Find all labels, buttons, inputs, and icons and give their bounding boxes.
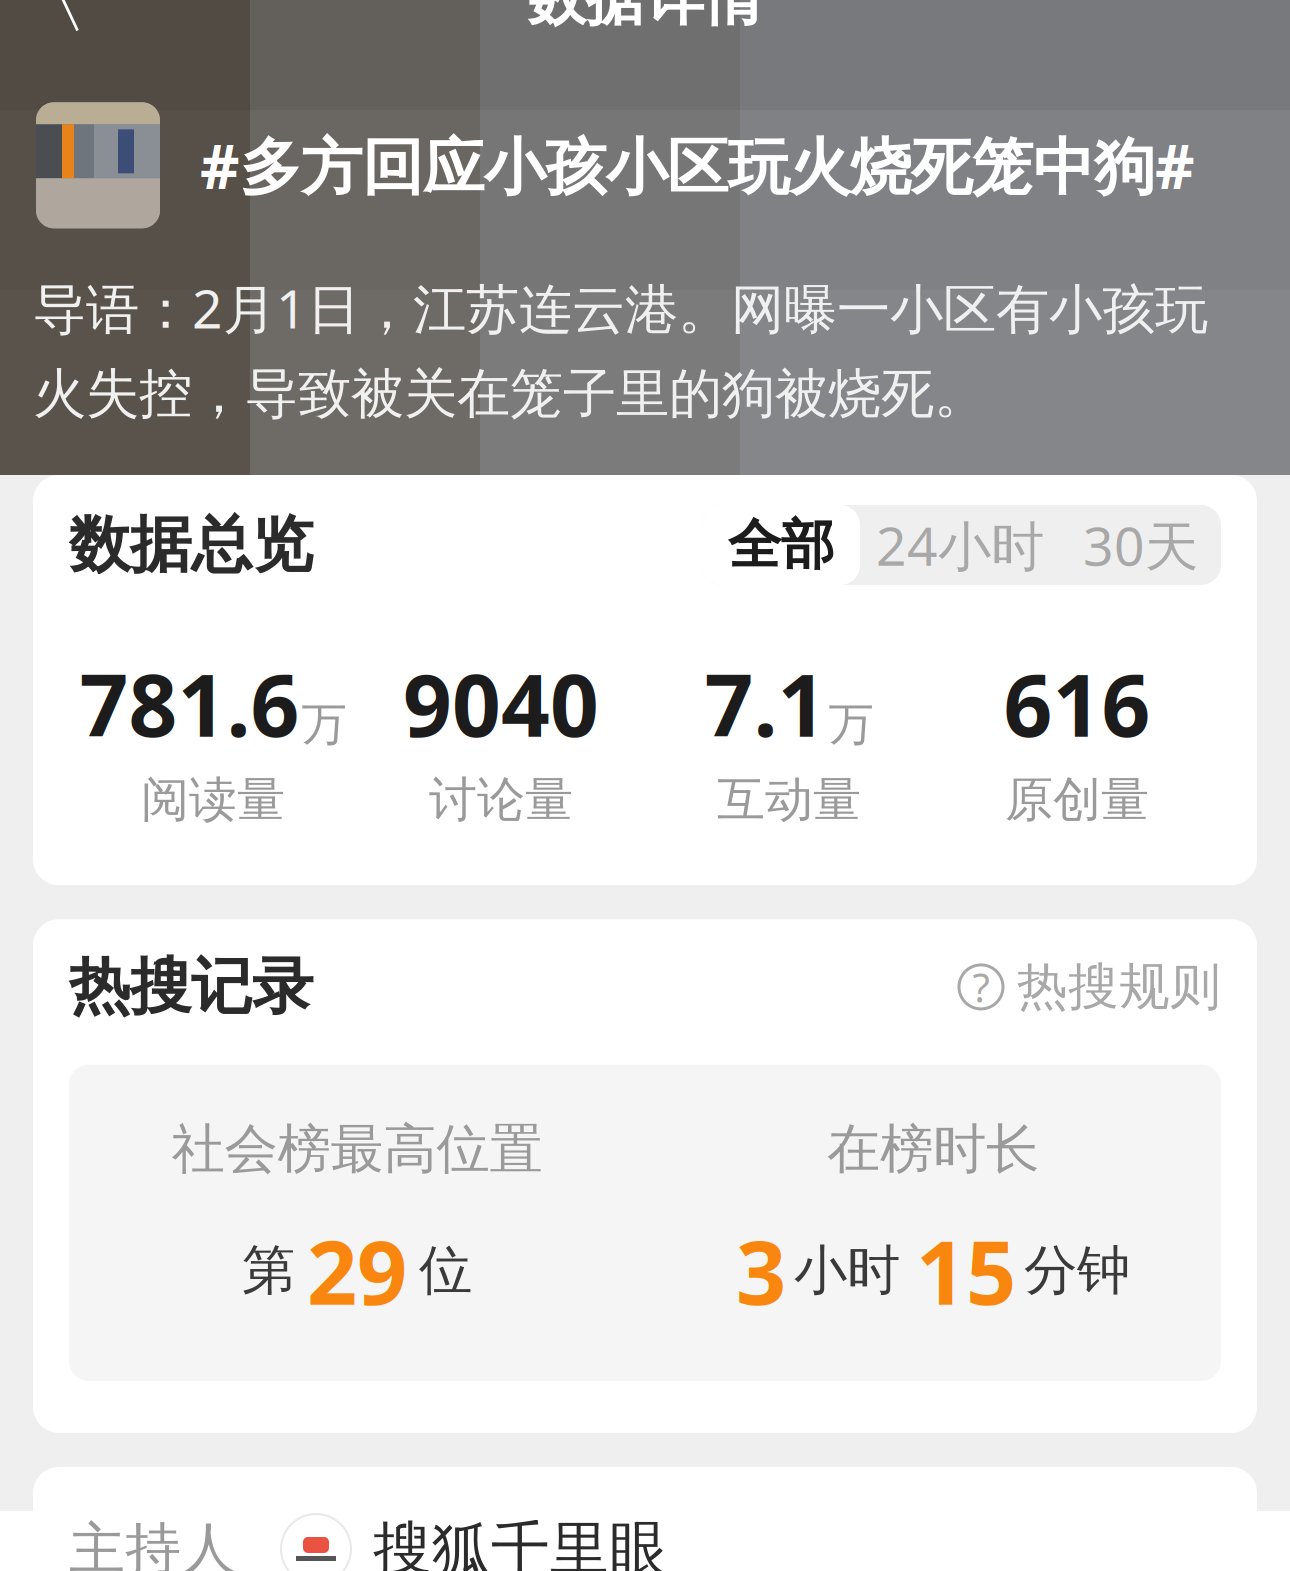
staticText: 〈 (11, 0, 88, 46)
staticText: 位 (419, 1238, 472, 1303)
staticText: 互动量 (717, 770, 861, 829)
staticText: 在榜时长 (827, 1117, 1039, 1182)
button[interactable]: 全部 (702, 505, 860, 585)
button[interactable]: ? (959, 956, 1221, 1018)
staticText: 热搜规则 (1017, 956, 1221, 1018)
staticText: 原创量 (1005, 770, 1149, 829)
staticText: 7.1 (704, 647, 826, 760)
staticText: 分钟 (1024, 1238, 1130, 1303)
staticText: #多方回应小孩小区玩火烧死笼中狗# (200, 125, 1195, 206)
button[interactable]: 30天 (1060, 505, 1221, 585)
staticText: 社会榜最高位置 (171, 1117, 542, 1182)
staticText: 搜狐千里眼 (373, 1513, 668, 1571)
button[interactable]: 主持人 (33, 1467, 1257, 1571)
staticText: 3 (736, 1212, 786, 1329)
staticText: 616 (1003, 647, 1150, 760)
staticText: 全部 (728, 512, 834, 578)
staticText: 9040 (403, 647, 599, 760)
staticText: 讨论量 (429, 770, 573, 829)
staticText: 万 (828, 697, 873, 752)
staticText: 万 (301, 697, 346, 752)
staticText: 24小时 (876, 510, 1044, 580)
staticText: 15 (916, 1212, 1016, 1329)
staticText: 主持人 (69, 1515, 237, 1571)
staticText: 29 (307, 1212, 407, 1329)
staticText: ? (972, 960, 989, 1013)
staticText: 数据总览 (69, 507, 313, 583)
staticText: 阅读量 (141, 770, 285, 829)
button[interactable]: 24小时 (860, 505, 1060, 585)
staticText: 781.6 (79, 647, 299, 760)
staticText: 导语：2月1日，江苏连云港。网曝一小区有小孩玩火失控，导致被关在笼子里的狗被烧死… (33, 272, 1208, 427)
staticText: 小时 (794, 1238, 900, 1303)
staticText: 热搜记录 (69, 949, 313, 1025)
button[interactable]: Back (0, 0, 100, 49)
staticText: 数据详情 (527, 0, 763, 35)
staticText: 30天 (1083, 510, 1198, 580)
staticText: 第 (242, 1238, 295, 1303)
